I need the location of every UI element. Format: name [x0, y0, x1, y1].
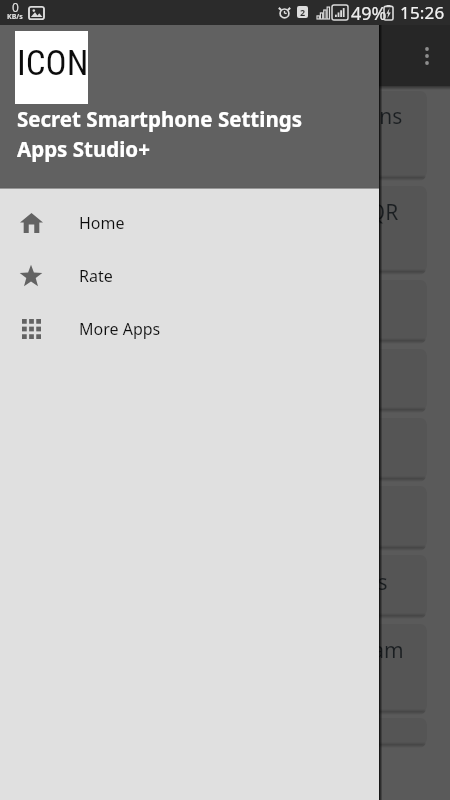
staticText: Device Ram [289, 636, 404, 665]
staticText: 15:26 [400, 1, 445, 24]
staticText: More Apps [79, 318, 161, 340]
staticText: KB/s [7, 12, 23, 21]
staticText: Rate [79, 265, 113, 287]
button[interactable]: Wifi Information [22, 486, 427, 548]
staticText: 49% [351, 1, 387, 26]
staticText: Secret Smartphone Settings [17, 105, 302, 133]
button[interactable]: Device Ram [22, 624, 427, 712]
staticText: Usage Statistics [233, 568, 388, 597]
button[interactable]: Home [0, 196, 379, 249]
button[interactable]: More Apps [0, 302, 379, 355]
staticText: 0 [12, 0, 19, 15]
staticText: 2 [300, 6, 306, 18]
button[interactable]: Secret Codes QR [22, 186, 427, 272]
button[interactable]: Secret Codes/Hidden Options [22, 91, 427, 178]
staticText: Secret Smartphone Settings [70, 42, 337, 69]
button[interactable]: Phone Information [22, 280, 427, 341]
button[interactable]: Battery Information [22, 349, 427, 410]
button[interactable]: Sensor Information [22, 718, 427, 745]
staticText: ICON [17, 43, 90, 84]
staticText: Secret Codes/Hidden Options [112, 102, 403, 131]
staticText: Home [79, 212, 125, 234]
button[interactable]: Usage Statistics [22, 555, 427, 616]
button[interactable]: More options [403, 25, 450, 86]
button[interactable]: Camera Information [22, 418, 427, 479]
button[interactable]: Rate [0, 249, 379, 302]
staticText: Secret Codes QR [236, 198, 399, 227]
staticText: Apps Studio+ [17, 135, 150, 163]
